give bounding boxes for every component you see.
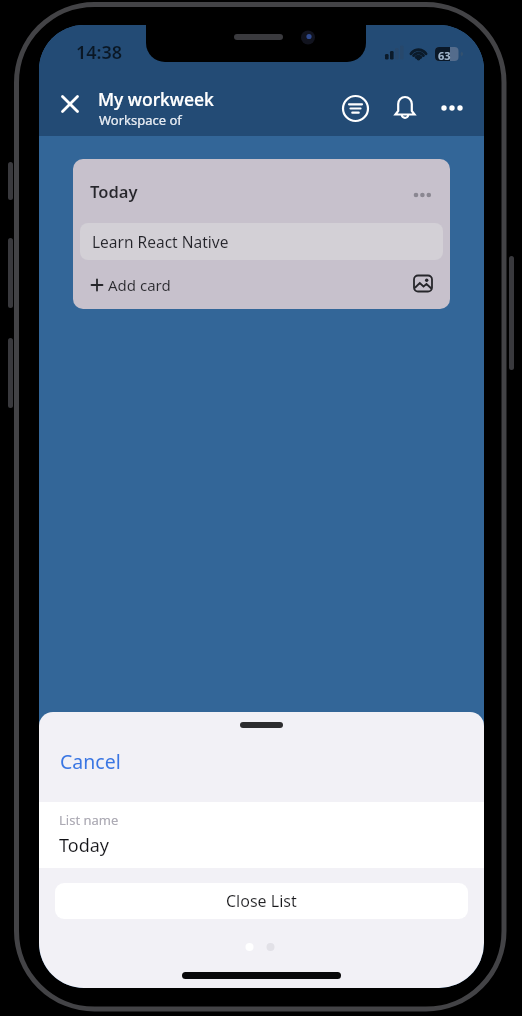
staticText: List name	[59, 811, 119, 829]
button[interactable]	[413, 274, 434, 293]
button[interactable]: Cancel	[49, 740, 132, 783]
button[interactable]	[437, 97, 467, 119]
staticText: Workspace of	[99, 111, 182, 129]
button[interactable]: Add card	[90, 272, 171, 298]
button[interactable]	[55, 89, 85, 119]
button[interactable]: List name	[59, 802, 484, 868]
staticText: Learn React Native	[92, 231, 229, 252]
button[interactable]	[391, 94, 419, 122]
staticText: Today	[90, 180, 138, 202]
staticText: Cancel	[60, 748, 121, 775]
staticText: 14:38	[76, 40, 123, 65]
button[interactable]	[407, 185, 437, 205]
button[interactable]	[342, 95, 369, 122]
staticText: 63	[438, 48, 451, 63]
staticText: My workweek	[98, 87, 214, 111]
staticText: Add card	[108, 275, 171, 295]
staticText: Today	[59, 833, 109, 858]
button[interactable]: Learn React Native	[80, 223, 443, 260]
staticText: Close List	[226, 890, 297, 912]
button[interactable]: Close List	[55, 883, 468, 919]
